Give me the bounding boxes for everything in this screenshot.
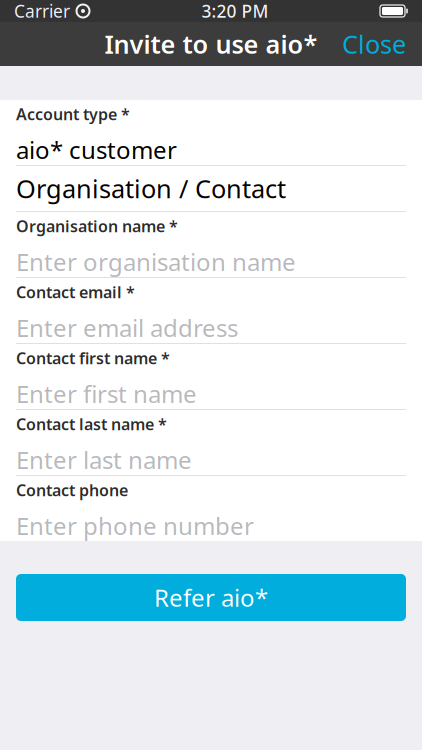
staticText: Enter organisation name [16, 246, 296, 278]
button[interactable]: Account type * [0, 100, 422, 165]
button[interactable]: Contact first name * [0, 344, 422, 409]
staticText: Refer aio* [154, 582, 268, 613]
staticText: Enter email address [16, 312, 238, 344]
staticText: Close [342, 27, 406, 61]
button[interactable]: Contact phone [0, 476, 422, 541]
button[interactable]: Close [330, 19, 418, 69]
button[interactable]: Contact last name * [0, 410, 422, 475]
staticText: aio* customer [16, 134, 177, 166]
staticText: 3:20 PM [201, 0, 268, 22]
staticText: Enter phone number [16, 510, 254, 542]
staticText: Contact phone [16, 479, 128, 501]
staticText: Organisation name * [16, 215, 178, 237]
staticText: Contact first name * [16, 347, 170, 369]
staticText: Contact last name * [16, 413, 167, 435]
staticText: Account type * [16, 103, 130, 125]
staticText: Carrier [14, 0, 70, 22]
button[interactable]: Refer aio* [16, 574, 406, 621]
staticText: Organisation / Contact [16, 172, 286, 205]
staticText: Contact email * [16, 281, 135, 303]
staticText: Enter last name [16, 444, 192, 476]
staticText: Enter first name [16, 378, 197, 410]
button[interactable]: Contact email * [0, 278, 422, 343]
staticText: Invite to use aio* [104, 27, 317, 61]
button[interactable]: Organisation name * [0, 212, 422, 277]
